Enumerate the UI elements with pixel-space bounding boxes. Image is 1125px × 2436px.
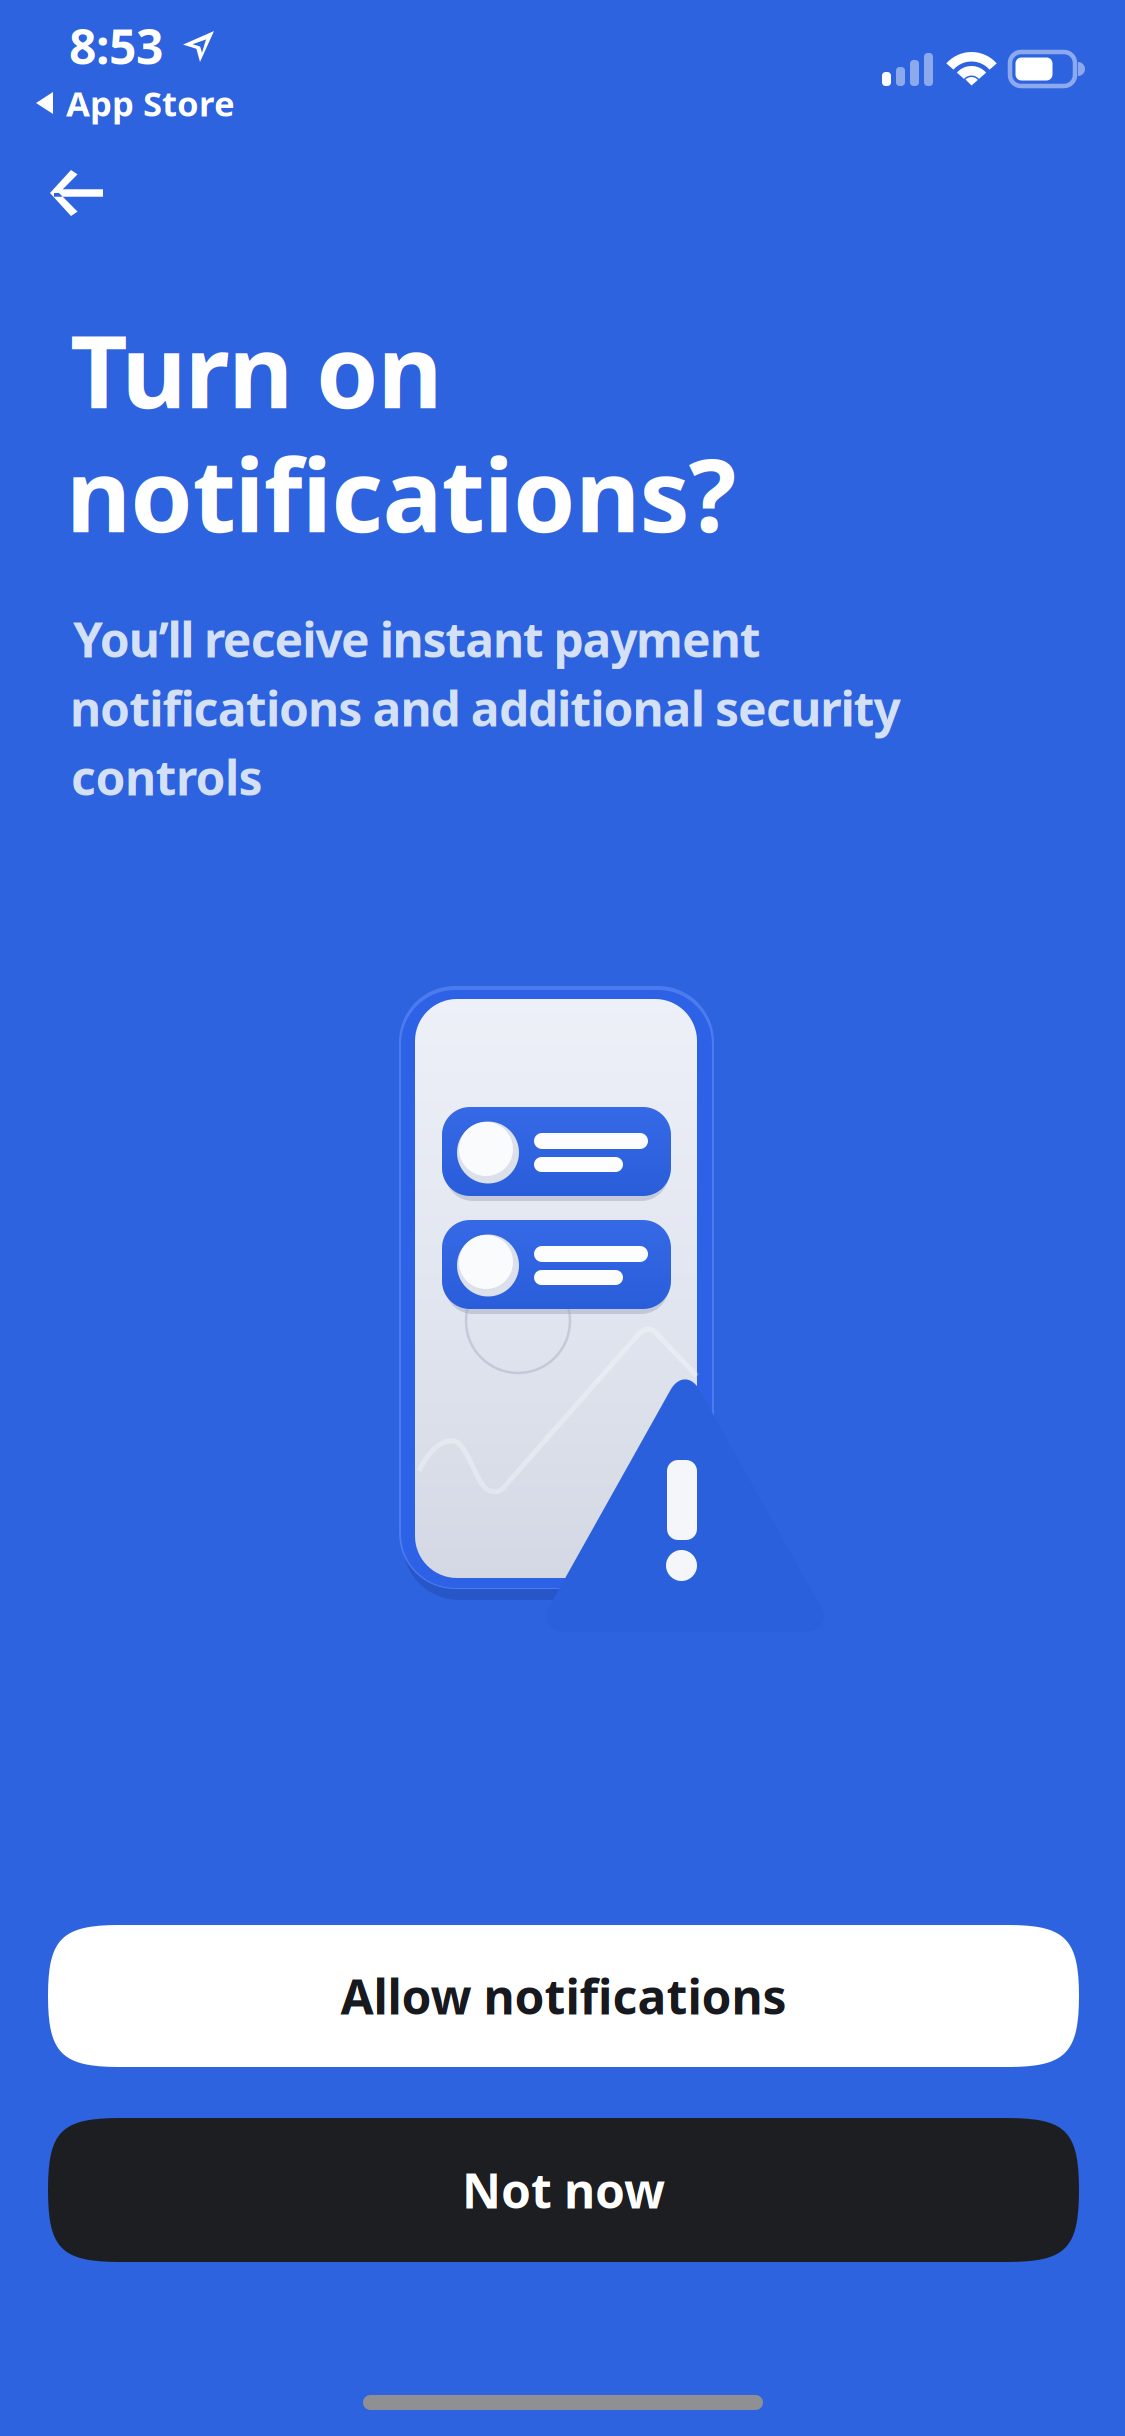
staticText: notifications and additional security bbox=[70, 676, 901, 740]
staticText: Allow notifications bbox=[340, 1964, 786, 2028]
button[interactable]: Back bbox=[0, 136, 153, 250]
staticText: App Store bbox=[66, 80, 235, 126]
button[interactable]: Not now bbox=[48, 2118, 1079, 2262]
staticText: Not now bbox=[462, 2158, 665, 2222]
staticText: notifications? bbox=[66, 427, 737, 560]
staticText: controls bbox=[71, 745, 262, 809]
staticText: 8:53 bbox=[69, 14, 163, 78]
button[interactable]: Allow notifications bbox=[48, 1925, 1079, 2067]
staticText: Turn on bbox=[70, 303, 442, 436]
staticText: You’ll receive instant payment bbox=[73, 607, 761, 671]
